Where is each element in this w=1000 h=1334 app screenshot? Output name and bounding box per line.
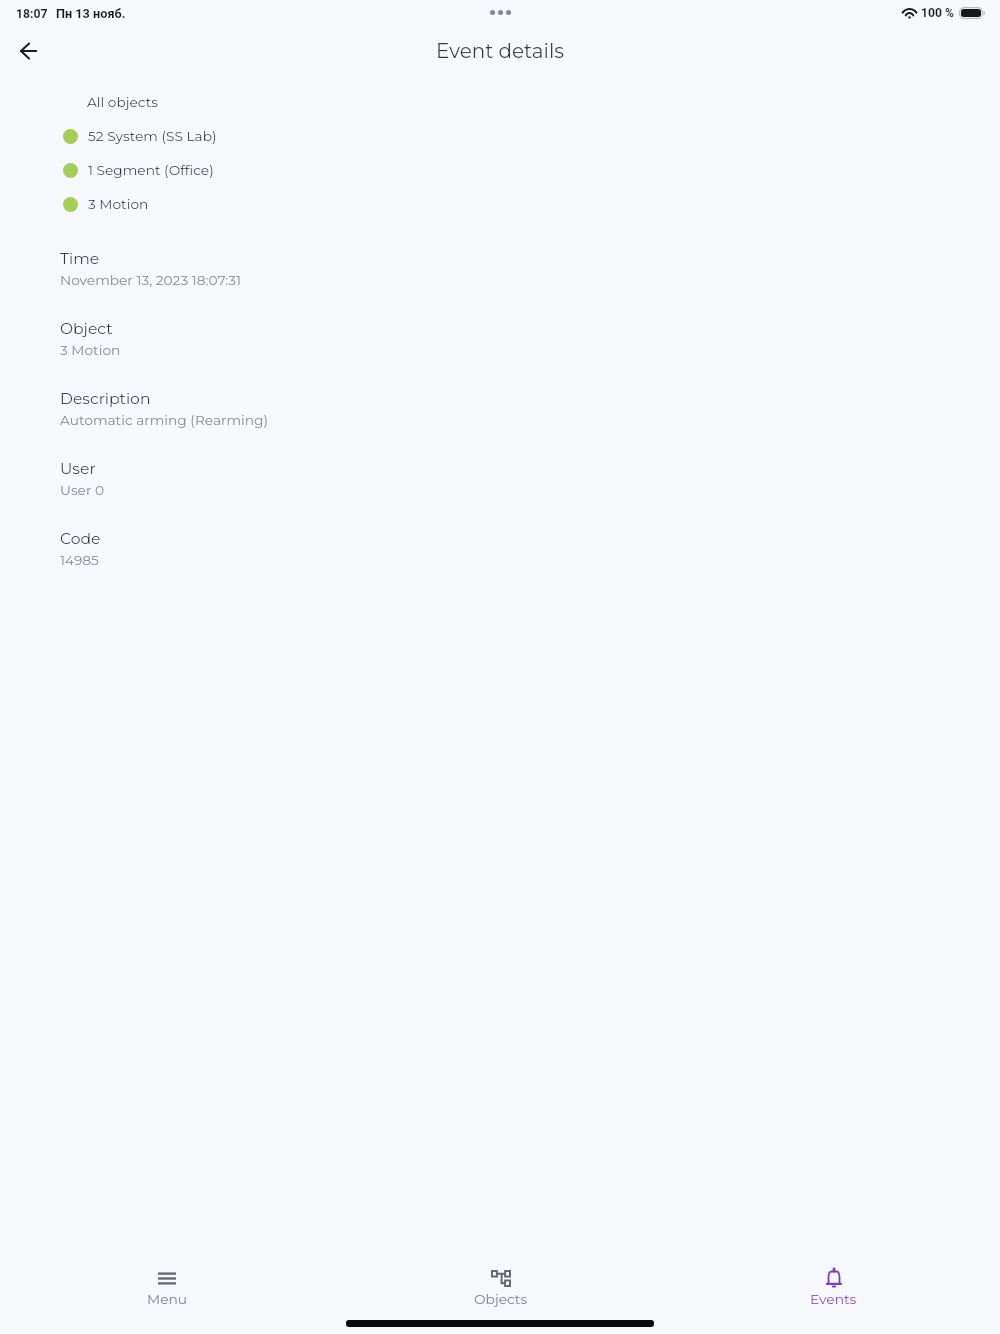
staticText: 100 % [921,6,955,20]
staticText: 52 System (SS Lab) [88,128,217,145]
button[interactable]: Events [667,1258,1000,1334]
button[interactable]: Back [7,29,51,73]
staticText: Пн 13 нояб. [56,6,126,21]
staticText: Object [60,319,113,338]
staticText: 1 Segment (Office) [88,162,214,179]
staticText: Description [60,389,151,408]
staticText: 3 Motion [60,342,121,359]
staticText: 3 Motion [88,196,149,213]
staticText: Automatic arming (Rearming) [60,412,268,429]
button[interactable]: Objects [334,1258,667,1334]
staticText: Event details [436,39,564,63]
staticText: 14985 [60,552,99,569]
staticText: November 13, 2023 18:07:31 [60,272,241,289]
staticText: 18:07 [16,7,48,21]
staticText: User [60,459,96,478]
button[interactable]: Menu [0,1258,334,1334]
staticText: Menu [147,1291,188,1308]
staticText: Code [60,529,101,548]
staticText: Events [810,1291,857,1308]
staticText: Objects [474,1291,528,1308]
staticText: Time [60,249,100,268]
staticText: User 0 [60,482,105,499]
staticText: All objects [87,94,158,111]
